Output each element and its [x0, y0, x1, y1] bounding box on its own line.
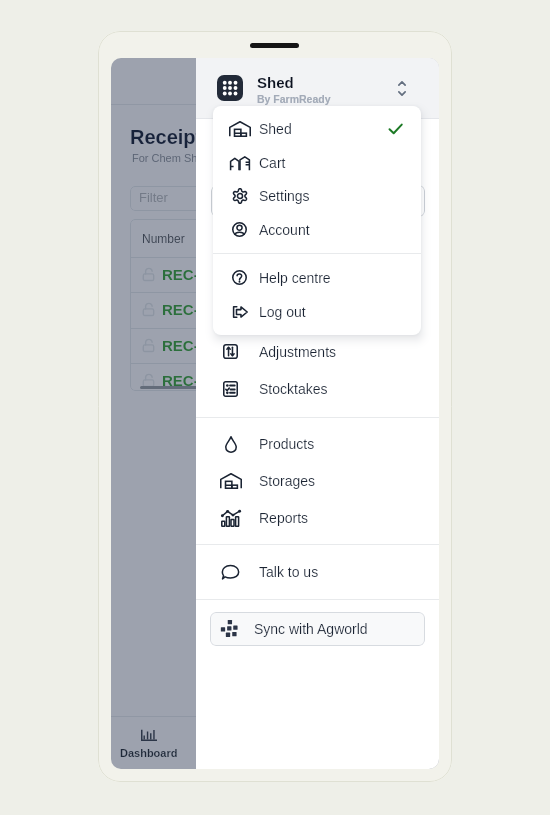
staticText: Sync with Agworld: [254, 621, 368, 637]
staticText: Products: [259, 436, 315, 452]
button[interactable]: Reports: [196, 501, 439, 535]
button[interactable]: Switch shed: [390, 74, 414, 102]
button[interactable]: Sync with Agworld: [210, 612, 425, 646]
staticText: Shed: [259, 121, 292, 137]
staticText: By FarmReady: [257, 93, 331, 105]
button[interactable]: Log out: [213, 295, 421, 329]
staticText: Filter: [139, 190, 168, 205]
staticText: REC-: [162, 372, 199, 389]
button[interactable]: Adjustments: [196, 335, 439, 369]
button[interactable]: Stocktakes: [196, 372, 439, 406]
button[interactable]: Apps: [217, 75, 243, 101]
staticText: For Chem Shed: [132, 152, 210, 164]
staticText: Shed: [257, 74, 294, 91]
button[interactable]: Talk to us: [196, 555, 439, 589]
staticText: Dashboard: [120, 747, 178, 759]
staticText: Reports: [259, 510, 309, 526]
button[interactable]: Account: [213, 213, 421, 247]
staticText: Stocktakes: [259, 381, 328, 397]
staticText: Adjustments: [259, 344, 337, 360]
button[interactable]: Dashboard: [111, 717, 187, 769]
staticText: Account: [259, 222, 310, 238]
button[interactable]: Filter: [130, 186, 426, 211]
staticText: REC-: [162, 337, 199, 354]
staticText: Cart: [259, 155, 286, 171]
staticText: Help centre: [259, 270, 331, 286]
button[interactable]: Storages: [196, 464, 439, 498]
staticText: Receipts: [130, 126, 214, 148]
button[interactable]: Products: [196, 427, 439, 461]
staticText: Talk to us: [259, 564, 319, 580]
staticText: REC-: [162, 301, 199, 318]
staticText: Number: [142, 232, 185, 245]
button[interactable]: Settings: [213, 179, 421, 213]
button[interactable]: Cart: [213, 146, 421, 180]
staticText: Log out: [259, 304, 306, 320]
staticText: Settings: [259, 188, 310, 204]
staticText: REC-: [162, 266, 199, 283]
button[interactable]: Help centre: [213, 261, 421, 295]
button[interactable]: Shed: [213, 112, 421, 146]
staticText: Storages: [259, 473, 316, 489]
